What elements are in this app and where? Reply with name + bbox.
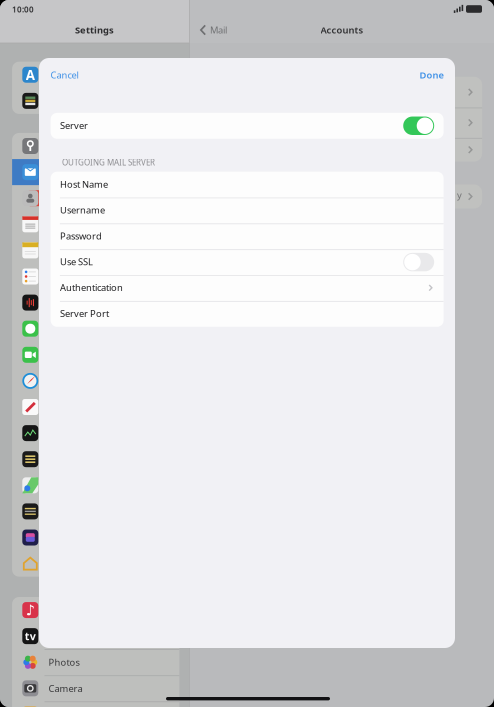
staticText: Server: [60, 119, 88, 131]
button[interactable]: Cancel: [50, 62, 106, 88]
staticText: Authentication: [60, 281, 123, 294]
staticText: Photos: [49, 656, 80, 668]
staticText: Accounts: [320, 24, 363, 36]
button[interactable]: y: [226, 184, 482, 208]
button[interactable]: [226, 107, 482, 138]
staticText: Password: [60, 230, 102, 242]
button[interactable]: Camera: [12, 675, 179, 701]
staticText: Use SSL: [60, 255, 93, 268]
button[interactable]: Photos: [12, 649, 179, 675]
staticText: Camera: [49, 682, 83, 695]
button[interactable]: Username: [51, 197, 444, 223]
staticText: A: [26, 66, 35, 84]
button[interactable]: Authentication: [51, 275, 444, 301]
staticText: ♪: [26, 602, 35, 618]
staticText: OUTGOING MAIL SERVER: [62, 157, 155, 168]
button[interactable]: Password: [51, 223, 444, 249]
button[interactable]: Server Port: [51, 301, 444, 327]
staticText: Settings: [75, 24, 114, 36]
staticText: 10:00: [12, 4, 34, 15]
button[interactable]: Use SSL: [51, 249, 444, 275]
button[interactable]: Host Name: [51, 172, 444, 198]
staticText: Server Port: [60, 307, 109, 319]
staticText: Mail: [210, 24, 227, 36]
staticText: tv: [25, 629, 36, 643]
staticText: Host Name: [60, 178, 108, 190]
button[interactable]: [226, 77, 482, 107]
staticText: Cancel: [50, 69, 78, 81]
button[interactable]: Server: [51, 113, 444, 139]
button[interactable]: [226, 138, 482, 162]
button[interactable]: Done: [393, 62, 443, 88]
staticText: Done: [419, 69, 443, 81]
button[interactable]: Mail: [196, 18, 231, 42]
staticText: y: [457, 189, 462, 201]
staticText: Username: [60, 204, 105, 216]
